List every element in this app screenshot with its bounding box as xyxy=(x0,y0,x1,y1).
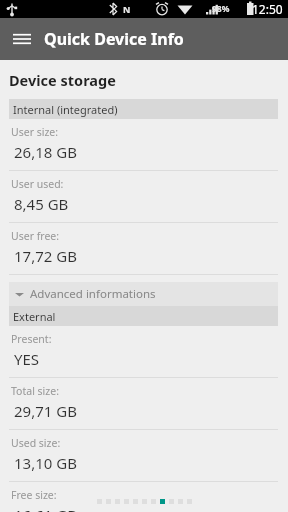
staticText: Free size: xyxy=(11,488,57,502)
button[interactable]: Total size: xyxy=(0,378,288,430)
staticText: Device storage xyxy=(9,70,116,90)
button[interactable]: User size: xyxy=(0,119,288,171)
staticText: N xyxy=(123,3,131,15)
staticText: 17,72 GB xyxy=(14,246,77,266)
button[interactable]: Open navigation drawer xyxy=(0,18,44,60)
staticText: 8,45 GB xyxy=(14,194,69,214)
staticText: Internal (integrated) xyxy=(13,102,118,117)
button[interactable]: User used: xyxy=(0,171,288,223)
staticText: 26,18 GB xyxy=(14,142,77,162)
staticText: Total size: xyxy=(11,384,59,398)
staticText: User used: xyxy=(11,177,64,191)
staticText: 16,61 GB xyxy=(14,505,77,512)
staticText: Quick Device Info xyxy=(44,28,184,50)
staticText: Used size: xyxy=(11,436,61,450)
staticText: Advanced informations xyxy=(30,286,156,302)
button[interactable]: Free size: xyxy=(0,482,288,512)
staticText: Present: xyxy=(11,332,52,346)
staticText: User size: xyxy=(11,125,59,139)
staticText: 98% xyxy=(212,3,230,15)
button[interactable]: External xyxy=(9,306,278,326)
staticText: 29,71 GB xyxy=(14,401,77,421)
button[interactable]: Advanced informations xyxy=(9,282,278,306)
button[interactable]: User free: xyxy=(0,223,288,275)
staticText: 13,10 GB xyxy=(14,453,77,473)
button[interactable]: Used size: xyxy=(0,430,288,482)
staticText: 12:50 xyxy=(252,1,283,17)
staticText: User free: xyxy=(11,229,60,243)
staticText: YES xyxy=(14,349,40,369)
button[interactable]: Internal (integrated) xyxy=(9,99,278,119)
staticText: External xyxy=(13,309,56,324)
button[interactable]: Present: xyxy=(0,326,288,378)
